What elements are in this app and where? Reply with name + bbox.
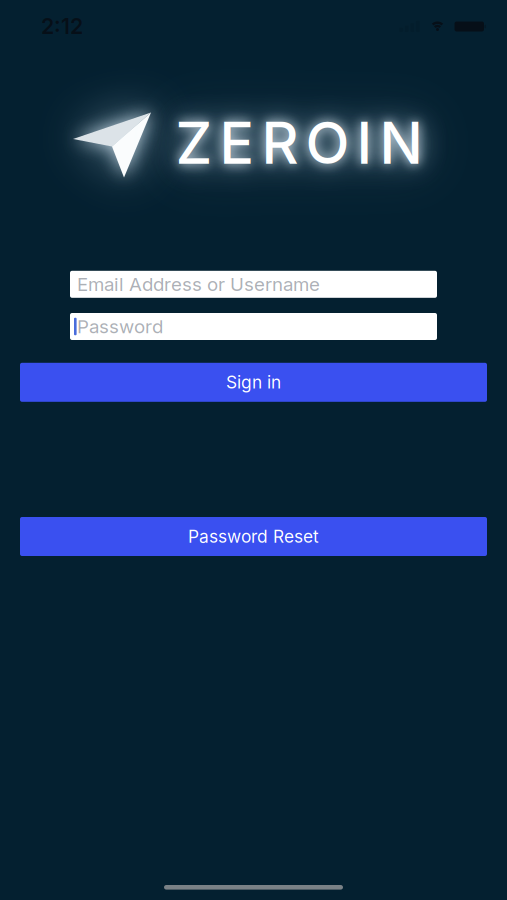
button[interactable]: Password Reset (20, 517, 487, 556)
staticText: Email Address or Username (77, 273, 320, 295)
button[interactable]: Sign in (20, 363, 487, 402)
staticText: 2:12 (41, 14, 83, 39)
staticText: Sign in (226, 372, 281, 392)
button[interactable]: Email Address or Username (70, 271, 437, 298)
staticText: Password (77, 315, 163, 337)
staticText: ZEROIN (175, 109, 422, 177)
staticText: Password Reset (188, 526, 319, 547)
button[interactable]: Password (70, 313, 437, 340)
